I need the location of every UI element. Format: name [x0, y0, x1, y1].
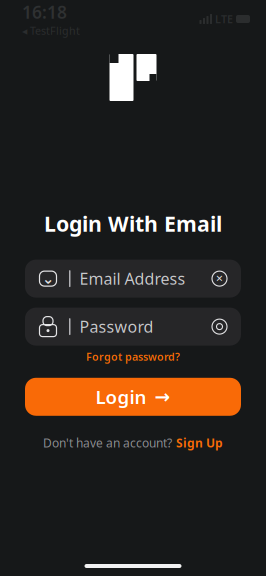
button[interactable]: Password	[25, 308, 241, 346]
staticText: →	[154, 386, 170, 407]
staticText: ◂ TestFlight	[22, 23, 80, 38]
staticText: Forgot password?	[86, 350, 180, 364]
staticText: Sign Up	[176, 435, 223, 451]
button[interactable]: Don't have an account?	[35, 430, 231, 456]
staticText: Don't have an account?	[43, 435, 172, 451]
button[interactable]: Login	[25, 378, 241, 416]
button[interactable]: Forgot password?	[78, 346, 188, 368]
staticText: 16:18	[22, 0, 67, 23]
staticText: ✕	[215, 273, 223, 284]
staticText: Email Address	[79, 268, 185, 289]
button[interactable]: Email Address	[25, 260, 241, 298]
staticText: Login	[95, 384, 146, 409]
staticText: Password	[79, 316, 153, 337]
staticText: LTE	[215, 12, 233, 26]
staticText: ⌄	[42, 270, 54, 287]
staticText: Login With Email	[44, 209, 222, 238]
